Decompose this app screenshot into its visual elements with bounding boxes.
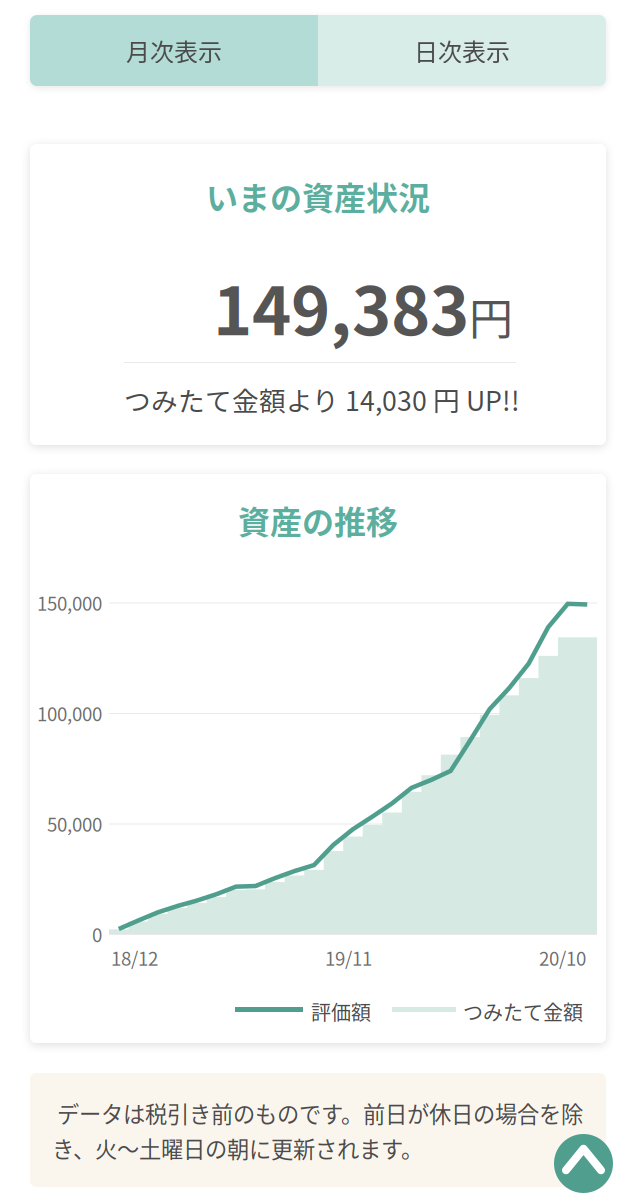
- staticText: つみたて金額: [463, 997, 583, 1026]
- staticText: 評価額: [311, 997, 371, 1026]
- staticText: 20/10: [539, 944, 586, 971]
- staticText: 50,000: [47, 810, 102, 837]
- staticText: 月次表示: [126, 33, 222, 68]
- staticText: 日次表示: [414, 33, 510, 68]
- staticText: 資産の推移: [238, 497, 398, 543]
- staticText: 149,383: [213, 258, 469, 354]
- staticText: 19/11: [325, 944, 372, 971]
- staticText: 150,000: [37, 589, 102, 616]
- staticText: つみたて金額より 14,030 円 UP!!: [124, 380, 520, 419]
- staticText: 0: [92, 920, 102, 947]
- staticText: 100,000: [37, 699, 102, 726]
- staticText: いまの資産状況: [206, 173, 430, 219]
- button[interactable]: 月次表示: [30, 15, 318, 86]
- staticText: データは税引き前のものです。前日が休日の場合を除: [57, 1097, 583, 1129]
- button[interactable]: 日次表示: [318, 15, 606, 86]
- button[interactable]: Scroll to top: [554, 1134, 613, 1193]
- staticText: 円: [469, 284, 513, 348]
- staticText: き、火〜土曜日の朝に更新されます。: [52, 1132, 423, 1164]
- staticText: 18/12: [111, 944, 158, 971]
